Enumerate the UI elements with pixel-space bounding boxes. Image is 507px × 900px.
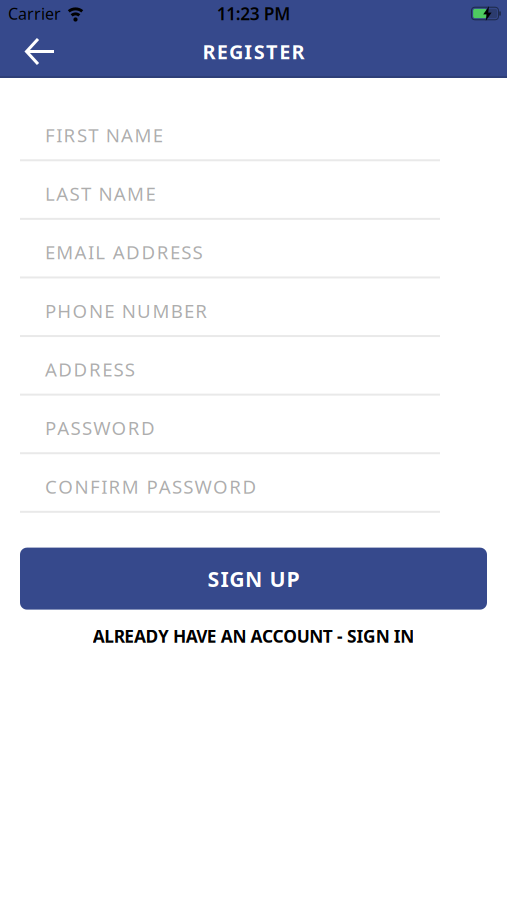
staticText: P [146, 474, 157, 499]
button[interactable]: S [20, 548, 487, 610]
button[interactable]: PHONE NUMBER [0, 298, 440, 337]
staticText: D [242, 474, 256, 499]
button[interactable]: CONFIRM PASSWORD [0, 474, 440, 513]
staticText: S [77, 122, 87, 147]
staticText: P [45, 415, 56, 440]
staticText: N [89, 298, 103, 323]
staticText: U [270, 564, 286, 593]
staticText: A [56, 181, 68, 206]
staticText: S [193, 240, 203, 264]
staticText: U [137, 298, 151, 323]
staticText: S [183, 474, 193, 499]
staticText: N [245, 564, 262, 593]
staticText: N [106, 122, 120, 147]
staticText: H [57, 298, 71, 323]
staticText: W [93, 415, 110, 440]
button[interactable]: EMAIL ADDRESS [0, 240, 440, 278]
staticText: R [229, 474, 241, 499]
staticText: A [114, 181, 126, 206]
staticText: T [88, 122, 98, 147]
staticText: P [45, 298, 56, 323]
staticText: I [220, 564, 228, 593]
button[interactable]: PASSWORD [0, 415, 440, 454]
staticText: R [291, 38, 304, 65]
staticText: I [56, 122, 62, 147]
staticText: R [128, 415, 140, 440]
staticText: S [172, 474, 182, 499]
staticText: O [111, 415, 126, 440]
button[interactable]: ADDRESS [0, 357, 440, 396]
staticText: R [202, 38, 215, 65]
staticText: E [153, 122, 163, 147]
staticText: C [45, 474, 57, 499]
staticText: S [71, 415, 81, 440]
staticText: M [127, 181, 144, 206]
staticText: S [70, 181, 80, 206]
staticText: T [81, 181, 91, 206]
staticText: F [90, 474, 100, 499]
staticText: 11:23 PM [217, 2, 290, 25]
staticText: D [141, 415, 155, 440]
staticText: E [184, 298, 194, 323]
staticText: N [75, 474, 89, 499]
staticText: ALREADY HAVE AN ACCOUNT - SIGN IN [93, 625, 414, 648]
staticText: O [73, 298, 88, 323]
staticText: P [286, 564, 299, 593]
staticText: I [244, 38, 252, 65]
staticText: N [98, 181, 112, 206]
staticText: S [208, 564, 220, 593]
button[interactable]: FIRST NAME [0, 122, 440, 161]
staticText: M [56, 240, 73, 264]
staticText: O [58, 474, 73, 499]
staticText: F [45, 122, 55, 147]
staticText: D [58, 357, 72, 382]
staticText: T [266, 38, 278, 65]
staticText: R [157, 240, 169, 264]
staticText: M [122, 474, 139, 499]
button[interactable]: Back [0, 36, 55, 67]
staticText: S [181, 240, 191, 264]
staticText: R [108, 474, 120, 499]
staticText: G [229, 38, 243, 65]
staticText: E [279, 38, 290, 65]
staticText: A [75, 240, 87, 264]
staticText: O [213, 474, 228, 499]
staticText: R [64, 122, 76, 147]
staticText: A [57, 415, 69, 440]
staticText: D [126, 240, 140, 264]
staticText: M [134, 122, 151, 147]
staticText: S [125, 357, 135, 382]
staticText: E [45, 240, 55, 264]
staticText: S [254, 38, 265, 65]
staticText: I [88, 240, 94, 264]
button[interactable]: ALREADY HAVE AN ACCOUNT - SIGN IN [93, 625, 414, 648]
staticText: S [113, 357, 123, 382]
button[interactable]: LAST NAME [0, 181, 440, 220]
staticText: S [82, 415, 92, 440]
staticText: A [45, 357, 57, 382]
staticText: A [159, 474, 171, 499]
staticText: E [170, 240, 180, 264]
staticText: B [171, 298, 183, 323]
staticText: E [217, 38, 228, 65]
staticText: Carrier [8, 3, 61, 24]
staticText: E [145, 181, 155, 206]
staticText: A [113, 240, 125, 264]
staticText: M [152, 298, 169, 323]
staticText: G [229, 564, 244, 593]
staticText: A [121, 122, 133, 147]
staticText: L [45, 181, 55, 206]
staticText: D [141, 240, 155, 264]
staticText: E [104, 298, 114, 323]
staticText: N [122, 298, 136, 323]
staticText: W [195, 474, 212, 499]
staticText: R [195, 298, 207, 323]
staticText: E [102, 357, 112, 382]
staticText: I [101, 474, 107, 499]
